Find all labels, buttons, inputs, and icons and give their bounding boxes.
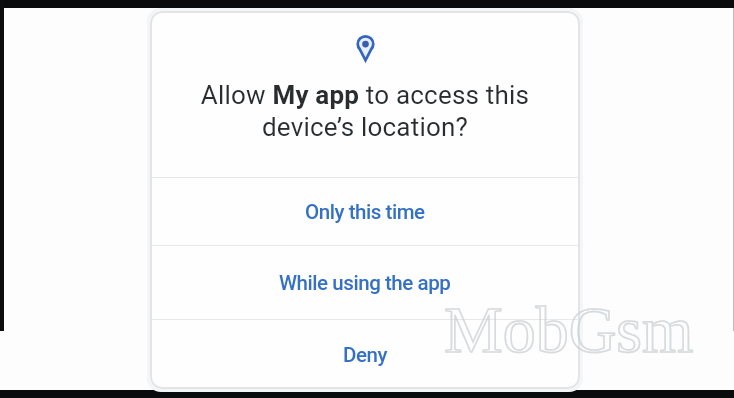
staticText: Only this time <box>305 200 425 224</box>
staticText: Allow My app to access this device’s loc… <box>150 80 580 143</box>
staticText: While using the app <box>279 271 451 295</box>
staticText: MobGsm <box>444 293 694 366</box>
button[interactable]: Deny <box>150 320 580 389</box>
staticText: Deny <box>343 343 387 367</box>
button[interactable]: Only this time <box>150 178 580 245</box>
button[interactable]: While using the app <box>150 246 580 319</box>
